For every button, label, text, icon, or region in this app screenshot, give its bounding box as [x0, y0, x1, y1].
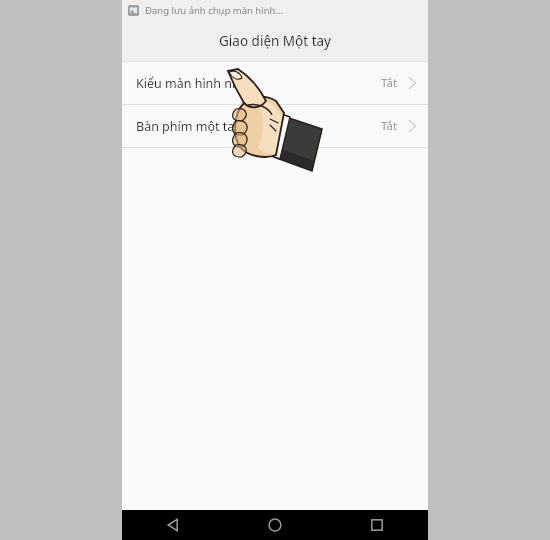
button[interactable]: Back — [122, 510, 224, 540]
staticText: Bàn phím một tay — [136, 118, 381, 135]
button[interactable]: Home — [224, 510, 326, 540]
staticText: Tắt — [381, 118, 398, 134]
staticText: Tắt — [381, 75, 398, 91]
button[interactable]: Bàn phím một tay — [122, 105, 428, 147]
staticText: Đang lưu ảnh chụp màn hình... — [145, 4, 284, 17]
staticText: Kiểu màn hình nhỏ — [136, 75, 381, 92]
button[interactable]: Kiểu màn hình nhỏ — [122, 62, 428, 104]
staticText: Giao diện Một tay — [219, 32, 331, 50]
button[interactable]: Recent apps — [326, 510, 428, 540]
